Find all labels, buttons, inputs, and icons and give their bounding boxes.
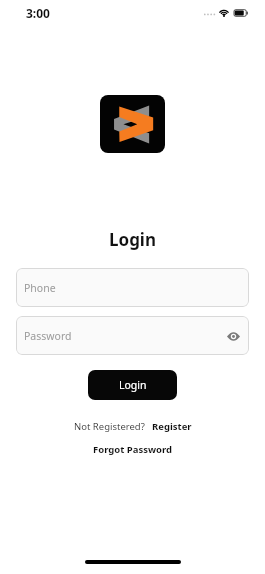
staticText: Login xyxy=(0,228,265,251)
staticText: Login xyxy=(119,378,147,392)
staticText: Password xyxy=(24,329,72,343)
button[interactable]: Register xyxy=(152,420,192,433)
button[interactable]: Show password xyxy=(223,326,243,346)
button[interactable]: Login xyxy=(88,370,177,400)
staticText: Forgot Password xyxy=(93,443,173,456)
button[interactable]: Forgot Password xyxy=(93,443,173,456)
staticText: Phone xyxy=(24,281,56,295)
staticText: 3:00 xyxy=(26,5,50,21)
button[interactable]: Phone xyxy=(16,268,249,307)
staticText: Not Registered? xyxy=(74,420,145,433)
button[interactable]: Password xyxy=(16,316,249,355)
staticText: Register xyxy=(152,420,192,433)
